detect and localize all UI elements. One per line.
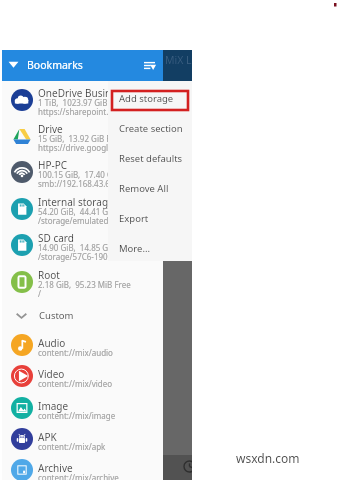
button[interactable]: Root bbox=[2, 264, 163, 300]
staticText: Add storage bbox=[119, 92, 174, 105]
staticText: Reset defaults bbox=[119, 152, 183, 165]
staticText: 15 GiB, 13.92 GiB F bbox=[38, 133, 111, 144]
staticText: Remove All bbox=[119, 182, 169, 195]
button[interactable]: Export bbox=[108, 203, 192, 233]
staticText: Video bbox=[38, 367, 65, 381]
staticText: Root bbox=[38, 268, 60, 282]
staticText: /storage/57C6-190E bbox=[38, 251, 113, 262]
staticText: SD card bbox=[38, 231, 74, 245]
staticText: HP-PC bbox=[38, 158, 68, 172]
staticText: 14.90 GiB, 14.85 Gi bbox=[38, 242, 111, 253]
staticText: wsxdn.com bbox=[236, 450, 300, 466]
button[interactable]: Internal storage bbox=[2, 191, 163, 227]
staticText: smb://192.168.43.6 bbox=[38, 178, 110, 189]
button[interactable]: Image bbox=[2, 394, 163, 422]
staticText: 100.15 GiB, 17.40 G bbox=[38, 169, 113, 180]
button[interactable]: Bookmarks bbox=[2, 50, 163, 81]
staticText: Audio bbox=[38, 336, 66, 350]
staticText: APK bbox=[38, 430, 57, 444]
staticText: content://mix/audio bbox=[38, 347, 113, 358]
staticText: Internal storage bbox=[38, 195, 114, 209]
button[interactable]: Add storage bbox=[108, 83, 192, 113]
button[interactable]: Custom bbox=[2, 300, 163, 331]
staticText: More... bbox=[119, 242, 151, 255]
staticText: MiX Lau bbox=[165, 53, 192, 67]
staticText: content://mix/image bbox=[38, 410, 116, 421]
staticText: content://mix/video bbox=[38, 378, 113, 389]
button[interactable]: Audio bbox=[2, 331, 163, 359]
staticText: / bbox=[38, 288, 41, 299]
button[interactable]: Drive bbox=[2, 118, 163, 154]
button[interactable]: More... bbox=[108, 233, 192, 263]
staticText: content://mix/archive bbox=[38, 472, 119, 480]
staticText: 1 TiB, 1023.97 GiB F bbox=[38, 97, 114, 108]
staticText: Custom bbox=[39, 309, 74, 322]
button[interactable]: OneDrive Busine bbox=[2, 82, 163, 118]
staticText: 54.20 GiB, 44.41 Gi bbox=[38, 206, 111, 217]
button[interactable]: APK bbox=[2, 425, 163, 453]
button[interactable]: HP-PC bbox=[2, 154, 163, 190]
staticText: Archive bbox=[38, 461, 73, 475]
staticText: 2.18 GiB, 95.23 MiB Free bbox=[38, 279, 131, 290]
staticText: content://mix/apk bbox=[38, 441, 106, 452]
staticText: Image bbox=[38, 399, 69, 413]
staticText: Drive bbox=[38, 122, 63, 136]
staticText: OneDrive Busine bbox=[38, 86, 117, 100]
button[interactable]: Reset defaults bbox=[108, 143, 192, 173]
staticText: https://drive.google. bbox=[38, 142, 115, 153]
button[interactable]: SD card bbox=[2, 227, 163, 263]
button[interactable]: Create section bbox=[108, 113, 192, 143]
button[interactable]: Remove All bbox=[108, 173, 192, 203]
staticText: https://sharepoint.c bbox=[38, 106, 113, 117]
button[interactable]: Video bbox=[2, 362, 163, 390]
button[interactable]: Sort bookmarks bbox=[137, 54, 161, 78]
button[interactable]: Archive bbox=[2, 456, 163, 480]
staticText: Export bbox=[119, 212, 149, 225]
staticText: /storage/emulated/0 bbox=[38, 215, 116, 226]
staticText: Create section bbox=[119, 122, 183, 135]
staticText: Bookmarks bbox=[27, 58, 83, 72]
